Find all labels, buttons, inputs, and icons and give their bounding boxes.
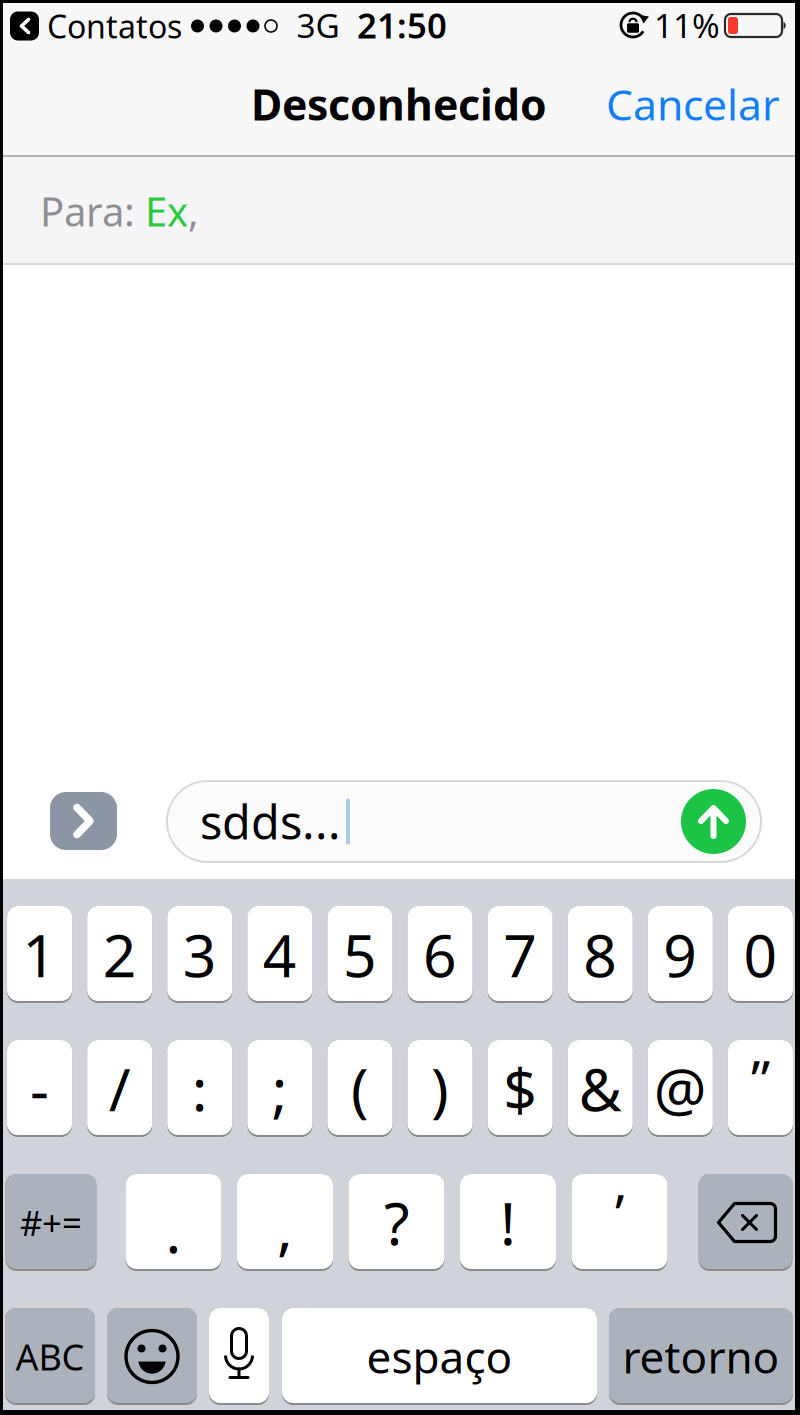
staticText: 5 bbox=[343, 915, 377, 993]
staticText: . bbox=[165, 1191, 181, 1269]
staticText: , bbox=[277, 1187, 293, 1265]
staticText: $ bbox=[503, 1049, 537, 1127]
staticText: ” bbox=[751, 1043, 770, 1114]
button[interactable]: , bbox=[237, 1174, 333, 1271]
button[interactable]: Apagar bbox=[698, 1174, 792, 1271]
staticText: 4 bbox=[263, 915, 297, 993]
staticText: 6 bbox=[423, 915, 457, 993]
staticText: ABC bbox=[15, 1333, 84, 1380]
button[interactable]: ” bbox=[728, 1040, 793, 1137]
staticText: 7 bbox=[503, 915, 537, 993]
staticText: @ bbox=[654, 1049, 707, 1127]
staticText: espaço bbox=[366, 1327, 512, 1386]
button[interactable]: 9 bbox=[648, 906, 713, 1003]
staticText: : bbox=[192, 1049, 208, 1127]
button[interactable]: ; bbox=[247, 1040, 312, 1137]
staticText: ( bbox=[351, 1049, 369, 1127]
button[interactable]: - bbox=[7, 1040, 72, 1137]
button[interactable]: retorno bbox=[609, 1308, 793, 1405]
button[interactable]: @ bbox=[648, 1040, 713, 1137]
staticText: Ex bbox=[145, 184, 188, 237]
button[interactable]: ’ bbox=[571, 1174, 667, 1271]
button[interactable]: . bbox=[125, 1174, 221, 1271]
button[interactable]: Ditado bbox=[209, 1308, 269, 1405]
staticText: - bbox=[30, 1049, 49, 1127]
button[interactable]: & bbox=[568, 1040, 633, 1137]
button[interactable]: Cancelar bbox=[606, 76, 780, 132]
button[interactable]: 0 bbox=[728, 906, 793, 1003]
staticText: & bbox=[579, 1049, 622, 1127]
staticText: / bbox=[109, 1049, 131, 1127]
button[interactable]: Voltar para Contatos bbox=[0, 0, 800, 52]
button[interactable]: 4 bbox=[247, 906, 312, 1003]
button[interactable]: espaço bbox=[282, 1308, 597, 1405]
button[interactable]: $ bbox=[488, 1040, 553, 1137]
button[interactable]: ! bbox=[460, 1174, 556, 1271]
staticText: ’ bbox=[615, 1177, 624, 1248]
button[interactable]: ( bbox=[327, 1040, 392, 1137]
button[interactable]: : bbox=[167, 1040, 232, 1137]
button[interactable]: 1 bbox=[7, 906, 72, 1003]
staticText: #+= bbox=[20, 1199, 82, 1245]
staticText: 3G bbox=[296, 3, 339, 47]
staticText: 2 bbox=[103, 915, 137, 993]
staticText: retorno bbox=[622, 1327, 779, 1386]
button[interactable]: 5 bbox=[327, 906, 392, 1003]
staticText: 11% bbox=[654, 3, 720, 47]
staticText: 9 bbox=[663, 915, 697, 993]
staticText: Cancelar bbox=[606, 76, 780, 132]
staticText: 8 bbox=[583, 915, 617, 993]
staticText: Para: bbox=[40, 184, 145, 237]
button[interactable]: Mais opções bbox=[50, 792, 117, 850]
button[interactable]: Emoji bbox=[107, 1308, 197, 1405]
staticText: ! bbox=[500, 1183, 516, 1261]
staticText: ; bbox=[272, 1049, 288, 1127]
button[interactable]: Enviar bbox=[681, 789, 746, 854]
button[interactable]: 7 bbox=[488, 906, 553, 1003]
staticText: 1 bbox=[23, 915, 57, 993]
staticText: ? bbox=[384, 1183, 409, 1261]
staticText: sdds... bbox=[200, 790, 341, 852]
button[interactable]: 8 bbox=[568, 906, 633, 1003]
staticText: 3 bbox=[183, 915, 217, 993]
button[interactable]: 2 bbox=[87, 906, 152, 1003]
button[interactable]: / bbox=[87, 1040, 152, 1137]
staticText: 21:50 bbox=[357, 2, 447, 48]
button[interactable]: ) bbox=[408, 1040, 473, 1137]
staticText: 0 bbox=[743, 915, 777, 993]
button[interactable]: #+= bbox=[5, 1174, 96, 1271]
button[interactable]: 3 bbox=[167, 906, 232, 1003]
button[interactable]: ? bbox=[348, 1174, 444, 1271]
staticText: Contatos bbox=[47, 5, 182, 47]
button[interactable]: ABC bbox=[5, 1308, 95, 1405]
staticText: , bbox=[188, 184, 199, 237]
staticText: Desconhecido bbox=[251, 76, 547, 132]
button[interactable]: 6 bbox=[408, 906, 473, 1003]
staticText: ) bbox=[431, 1049, 449, 1127]
